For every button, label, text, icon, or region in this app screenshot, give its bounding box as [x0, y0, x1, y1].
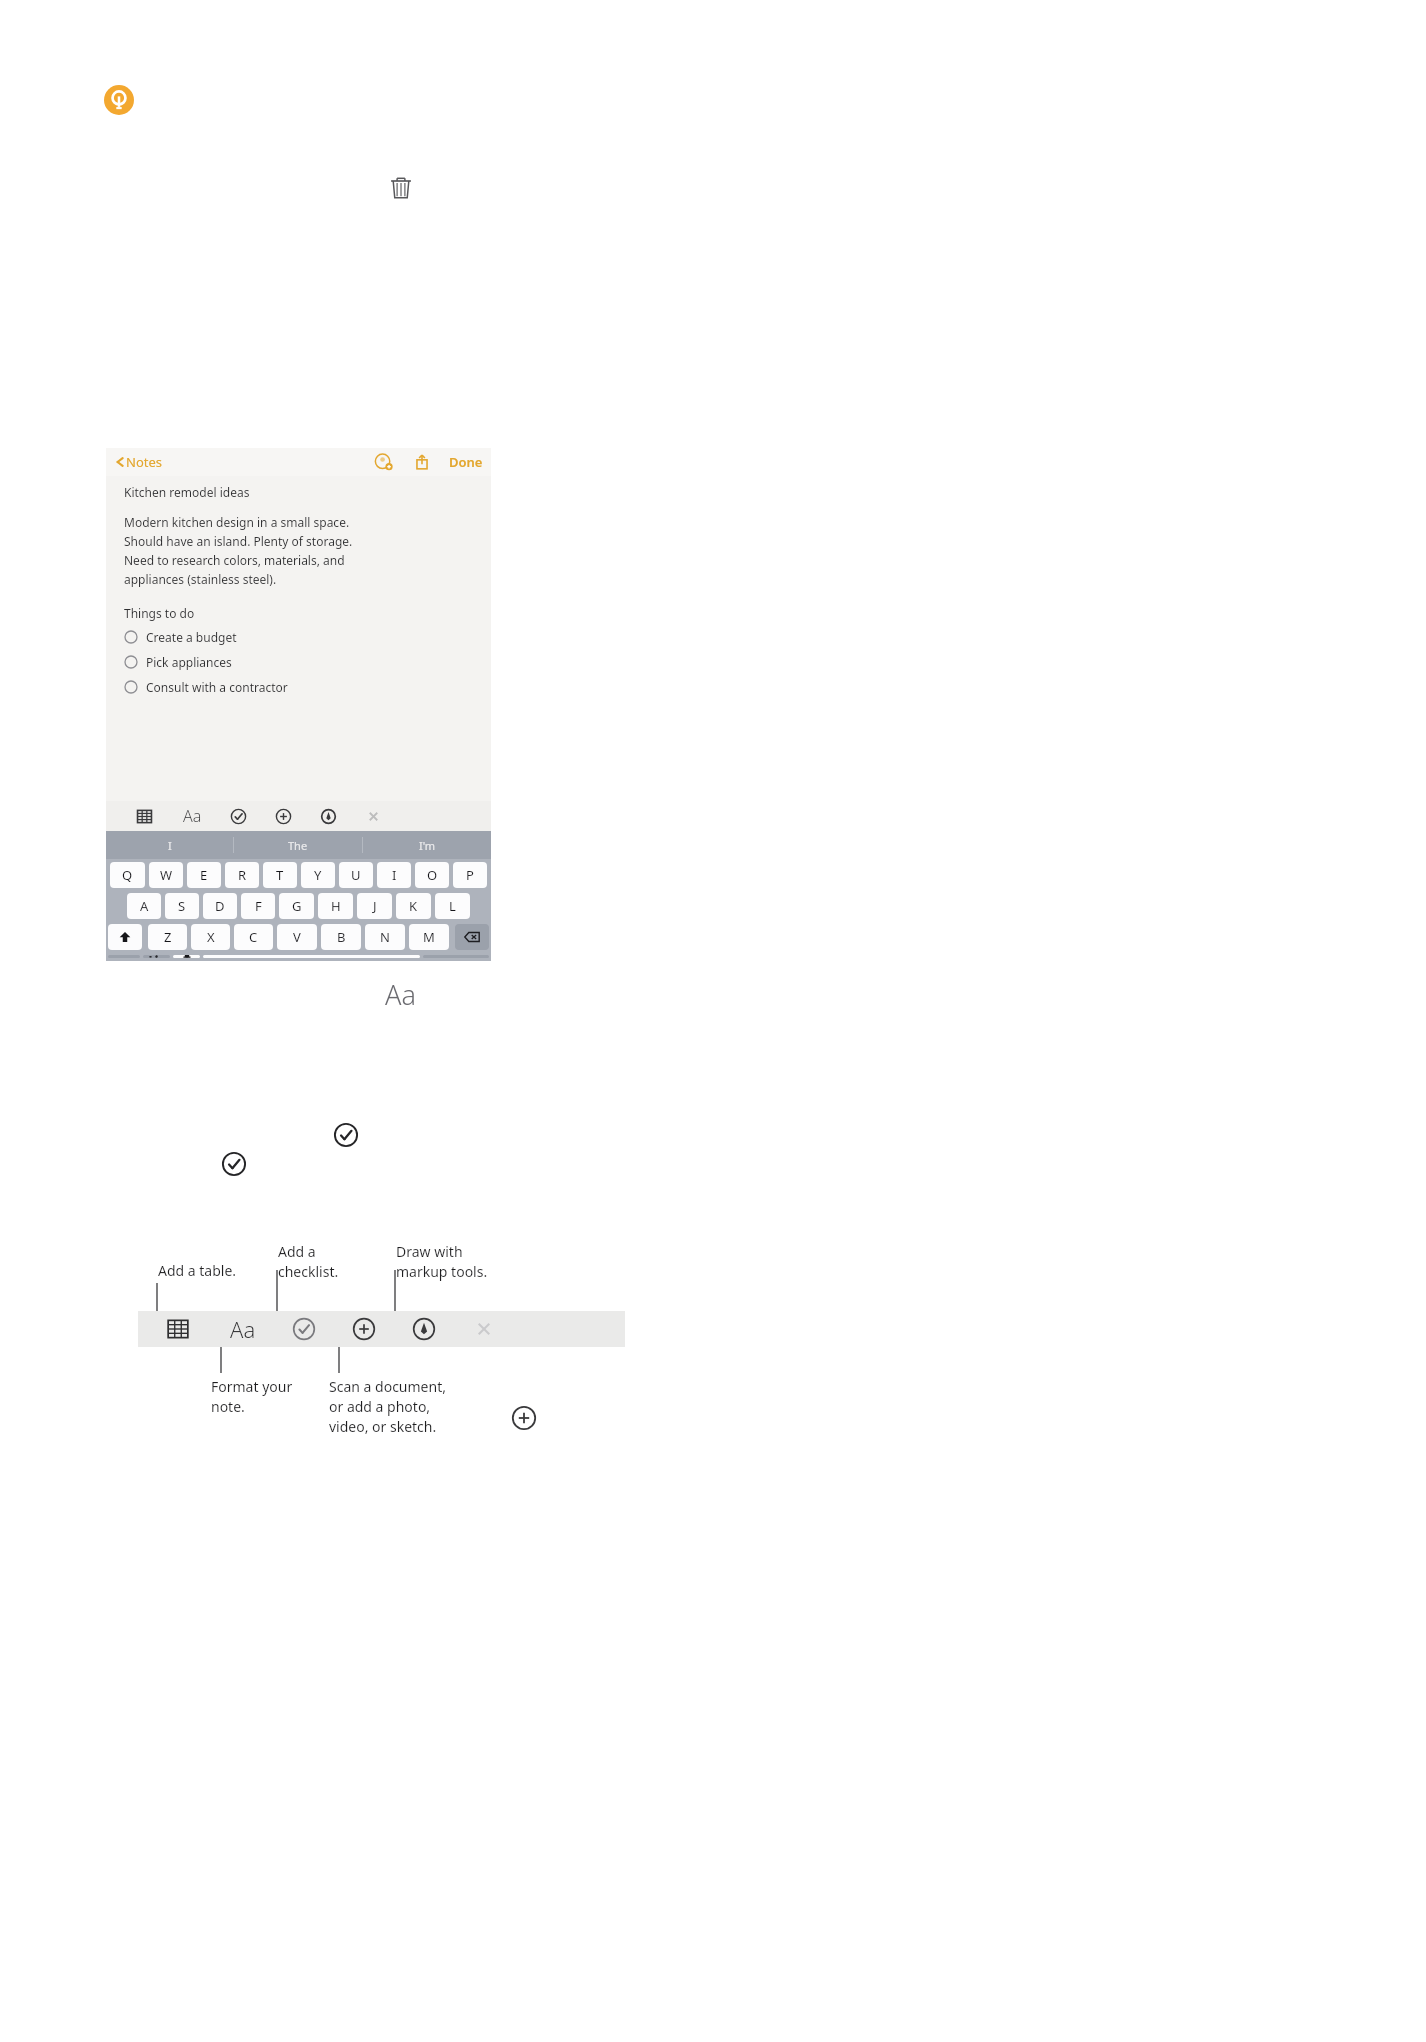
button[interactable]: H — [318, 893, 353, 919]
staticText: Add a table. — [158, 1261, 237, 1280]
button[interactable]: Key — [108, 924, 142, 950]
button[interactable]: Share — [413, 453, 431, 471]
button[interactable]: P — [453, 862, 487, 888]
staticText: G — [292, 897, 302, 915]
button[interactable]: J — [357, 893, 392, 919]
button[interactable]: N — [365, 924, 405, 950]
staticText: U — [351, 866, 361, 884]
button[interactable]: Y — [301, 862, 335, 888]
button[interactable]: Add checklist — [230, 808, 247, 825]
button[interactable]: Markup — [320, 808, 337, 825]
button[interactable]: Z — [148, 924, 187, 950]
button[interactable]: X — [191, 924, 230, 950]
button[interactable]: C — [234, 924, 273, 950]
staticText: J — [373, 897, 377, 915]
button[interactable]: L — [435, 893, 470, 919]
staticText: F — [255, 897, 262, 915]
button[interactable]: G — [279, 893, 314, 919]
button[interactable]: Aa — [230, 1314, 256, 1344]
button[interactable]: O — [415, 862, 449, 888]
staticText: T — [276, 866, 284, 884]
staticText: Z — [164, 928, 172, 946]
button[interactable]: Aa — [183, 805, 202, 827]
button[interactable]: F — [241, 893, 275, 919]
button[interactable]: Close — [365, 808, 382, 825]
staticText: Kitchen remodel ideas — [124, 484, 250, 500]
button[interactable]: Markup — [412, 1317, 436, 1341]
staticText: I'm — [419, 838, 436, 853]
staticText: S — [178, 897, 186, 915]
staticText: X — [207, 928, 215, 946]
staticText: Q — [122, 866, 133, 884]
staticText: O — [427, 866, 438, 884]
staticText: Y — [314, 866, 322, 884]
staticText: R — [238, 866, 247, 884]
staticText: N — [380, 928, 390, 946]
button[interactable]: Dictate — [173, 955, 200, 958]
button[interactable]: E — [187, 862, 221, 888]
button[interactable]: Done — [449, 453, 483, 471]
staticText: W — [160, 866, 173, 884]
button[interactable]: B — [321, 924, 361, 950]
staticText: Aa — [385, 976, 416, 1013]
staticText: Things to do — [124, 605, 195, 621]
button[interactable]: T — [263, 862, 297, 888]
staticText: Modern kitchen design in a small space. … — [124, 514, 353, 587]
staticText: Scan a document, or add a photo, video, … — [329, 1377, 446, 1436]
staticText: A — [140, 897, 149, 915]
button[interactable]: Q — [110, 862, 145, 888]
button[interactable]: Add media — [275, 808, 292, 825]
staticText: E — [200, 866, 208, 884]
staticText: Add a checklist. — [278, 1242, 339, 1281]
button[interactable]: Tip — [104, 85, 134, 115]
button[interactable]: U — [339, 862, 373, 888]
staticText: The — [288, 838, 308, 853]
button[interactable]: I — [377, 862, 411, 888]
staticText: Pick appliances — [146, 654, 232, 670]
button[interactable]: Add table — [136, 808, 153, 825]
button[interactable]: V — [277, 924, 317, 950]
button[interactable]: W — [149, 862, 183, 888]
button[interactable]: I'm — [363, 831, 491, 859]
staticText: H — [331, 897, 341, 915]
button[interactable]: Add checklist — [292, 1317, 316, 1341]
button[interactable]: Consult with a contractor — [124, 674, 491, 699]
button[interactable]: Add table — [166, 1317, 190, 1341]
button[interactable]: The — [234, 831, 362, 859]
staticText: Draw with markup tools. — [396, 1242, 488, 1281]
button[interactable]: Add people — [375, 453, 393, 471]
button[interactable]: I — [106, 831, 233, 859]
button[interactable]: Notes — [114, 453, 162, 471]
button[interactable]: K — [396, 893, 431, 919]
button[interactable]: S — [165, 893, 199, 919]
staticText: L — [449, 897, 456, 915]
staticText: I — [168, 838, 172, 853]
button[interactable]: Close — [472, 1317, 496, 1341]
staticText: C — [249, 928, 258, 946]
staticText: M — [423, 928, 435, 946]
staticText: Consult with a contractor — [146, 679, 288, 695]
staticText: Notes — [126, 453, 162, 471]
button[interactable]: R — [225, 862, 259, 888]
button[interactable]: Key — [455, 924, 489, 950]
button[interactable]: Create a budget — [124, 624, 491, 649]
button[interactable]: A — [127, 893, 161, 919]
button[interactable]: Add media — [352, 1317, 376, 1341]
button[interactable]: Delete note — [386, 172, 416, 202]
staticText: P — [466, 866, 474, 884]
staticText: Format your note. — [211, 1377, 293, 1416]
button[interactable]: D — [203, 893, 237, 919]
staticText: Create a budget — [146, 629, 237, 645]
button[interactable]: Emoji — [143, 955, 170, 958]
button[interactable]: Pick appliances — [124, 649, 491, 674]
staticText: I — [392, 866, 397, 884]
staticText: D — [215, 897, 225, 915]
button[interactable]: M — [409, 924, 449, 950]
staticText: B — [337, 928, 346, 946]
